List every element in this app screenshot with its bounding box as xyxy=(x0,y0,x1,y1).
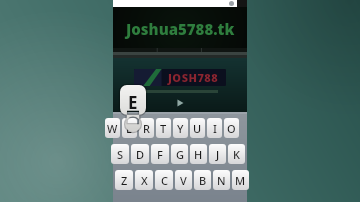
button[interactable]: Play xyxy=(172,98,188,108)
other: Key preview E xyxy=(120,85,146,133)
staticText: I xyxy=(213,121,217,136)
staticText: Joshua5788.tk xyxy=(126,19,235,39)
button[interactable]: JOSH788 xyxy=(134,69,226,86)
button[interactable]: V xyxy=(175,170,192,190)
button[interactable]: W xyxy=(105,118,120,138)
button[interactable]: Account xyxy=(229,1,234,6)
button[interactable]: Y xyxy=(173,118,188,138)
button[interactable]: R xyxy=(139,118,154,138)
button[interactable]: D xyxy=(131,144,149,164)
staticText: H xyxy=(194,147,203,162)
button[interactable]: M xyxy=(232,170,249,190)
staticText: JOSH788 xyxy=(168,70,219,85)
staticText: B xyxy=(199,173,207,188)
staticText: C xyxy=(161,173,168,188)
button[interactable]: B xyxy=(194,170,211,190)
staticText: W xyxy=(107,121,118,136)
button[interactable]: K xyxy=(228,144,245,164)
button[interactable]: O xyxy=(224,118,239,138)
staticText: X xyxy=(141,173,148,188)
button[interactable]: X xyxy=(135,170,153,190)
staticText: S xyxy=(117,147,124,162)
button[interactable]: J xyxy=(209,144,226,164)
staticText: M xyxy=(235,173,246,188)
button[interactable]: Z xyxy=(115,170,133,190)
staticText: K xyxy=(233,147,240,162)
staticText: R xyxy=(143,121,150,136)
button[interactable]: H xyxy=(190,144,207,164)
button[interactable]: S xyxy=(111,144,129,164)
button[interactable]: N xyxy=(213,170,230,190)
staticText: T xyxy=(160,121,167,136)
staticText: V xyxy=(180,173,187,188)
staticText: U xyxy=(193,121,202,136)
staticText: J xyxy=(216,147,220,162)
staticText: F xyxy=(157,147,163,162)
staticText: Y xyxy=(177,121,184,136)
button[interactable]: G xyxy=(171,144,188,164)
staticText: E xyxy=(126,121,133,136)
staticText: G xyxy=(176,147,184,162)
staticText: Z xyxy=(121,173,128,188)
staticText: O xyxy=(227,121,236,136)
button[interactable]: U xyxy=(190,118,205,138)
staticText: D xyxy=(136,147,145,162)
staticText: N xyxy=(217,173,226,188)
staticText: E xyxy=(128,91,138,114)
button[interactable]: C xyxy=(155,170,173,190)
button[interactable]: I xyxy=(207,118,222,138)
button[interactable]: E xyxy=(122,118,137,138)
button[interactable]: T xyxy=(156,118,171,138)
button[interactable]: F xyxy=(151,144,169,164)
button[interactable]: Account xyxy=(113,0,247,7)
